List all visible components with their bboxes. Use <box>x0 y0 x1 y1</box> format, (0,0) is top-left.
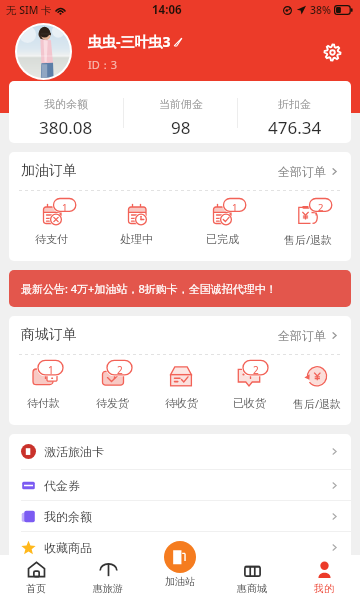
staticText: 全部订单 <box>278 328 326 343</box>
button[interactable]: Settings <box>318 38 346 66</box>
staticText: ID：3 <box>88 57 118 72</box>
button[interactable]: 2 <box>78 355 147 410</box>
staticText: 代金券 <box>44 478 80 493</box>
button[interactable]: 惠商城 <box>216 560 288 595</box>
button[interactable]: 首页 <box>0 560 72 595</box>
staticText: 380.08 <box>39 116 93 139</box>
staticText: 我的 <box>314 582 334 595</box>
staticText: 我的余额 <box>44 509 92 524</box>
staticText: 激活旅油卡 <box>44 444 104 459</box>
staticText: 98 <box>171 116 191 139</box>
staticText: 收藏商品 <box>44 540 92 555</box>
staticText: 折扣金 <box>278 97 311 111</box>
button[interactable]: 收藏商品 <box>9 532 351 562</box>
button[interactable]: 1 <box>179 191 265 246</box>
staticText: 待收货 <box>165 396 198 410</box>
button[interactable]: 售后/退款 <box>283 355 351 411</box>
button[interactable]: 我的 <box>288 560 360 595</box>
staticText: 我的余额 <box>44 97 88 111</box>
button[interactable]: 2 <box>215 355 283 410</box>
staticText: 首页 <box>26 582 46 595</box>
button[interactable]: 1 <box>9 191 94 246</box>
staticText: 已收货 <box>233 396 266 410</box>
staticText: 2 <box>117 363 123 377</box>
button[interactable]: 我的余额 <box>9 501 351 531</box>
staticText: 虫虫-三叶虫3 <box>88 32 171 51</box>
button[interactable]: 最新公告: 4万+加油站，8折购卡，全国诚招代理中！ <box>9 270 351 307</box>
button[interactable]: 全部订单 <box>278 328 339 343</box>
staticText: 商城订单 <box>21 326 77 344</box>
staticText: 售后/退款 <box>293 396 342 411</box>
staticText: 加油订单 <box>21 162 77 180</box>
staticText: 1 <box>48 363 54 377</box>
staticText: 待付款 <box>27 396 60 410</box>
staticText: 售后/退款 <box>284 232 333 247</box>
staticText: 1 <box>232 201 238 214</box>
staticText: 处理中 <box>120 232 153 246</box>
staticText: 14:06 <box>152 2 182 18</box>
button[interactable]: 2 <box>265 191 351 247</box>
staticText: 2 <box>253 363 259 377</box>
button[interactable]: 全部订单 <box>278 164 339 179</box>
staticText: 无 SIM 卡 <box>6 3 52 17</box>
staticText: 476.34 <box>268 116 322 139</box>
staticText: 38% <box>310 3 331 17</box>
staticText: 惠旅游 <box>93 582 123 595</box>
staticText: 惠商城 <box>237 582 267 595</box>
staticText: 最新公告: 4万+加油站，8折购卡，全国诚招代理中！ <box>21 281 277 296</box>
staticText: 1 <box>62 201 68 214</box>
staticText: 加油站 <box>165 575 195 586</box>
button[interactable]: 加油站 <box>164 541 196 586</box>
staticText: 当前佣金 <box>159 97 203 111</box>
button[interactable]: 处理中 <box>94 191 179 246</box>
button[interactable]: 代金券 <box>9 470 351 500</box>
staticText: 全部订单 <box>278 164 326 179</box>
staticText: 待发货 <box>96 396 129 410</box>
button[interactable]: 待收货 <box>147 355 215 410</box>
button[interactable]: 1 <box>9 355 78 410</box>
staticText: 2 <box>318 201 324 214</box>
button[interactable]: 激活旅油卡 <box>9 434 351 469</box>
button[interactable]: 惠旅游 <box>72 560 144 595</box>
staticText: 待支付 <box>35 232 68 246</box>
staticText: 已完成 <box>206 232 239 246</box>
